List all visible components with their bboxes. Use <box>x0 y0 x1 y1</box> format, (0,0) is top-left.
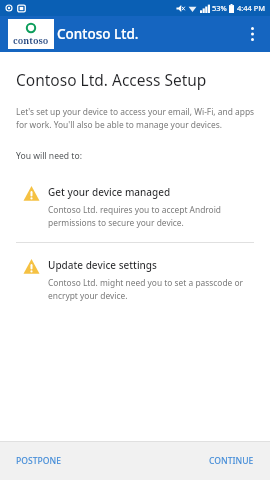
staticText: Get your device managed <box>48 185 171 199</box>
staticText: POSTPONE <box>16 455 61 467</box>
button[interactable]: Get your device managed <box>0 185 270 228</box>
button[interactable]: More options <box>234 16 270 52</box>
staticText: Update device settings <box>48 258 157 272</box>
staticText: You will need to: <box>16 150 82 162</box>
staticText: Contoso Ltd. Access Setup <box>16 69 207 90</box>
button[interactable]: POSTPONE <box>8 449 69 473</box>
staticText: Contoso Ltd. <box>57 25 139 43</box>
staticText: Contoso Ltd. requires you to accept Andr… <box>48 204 256 228</box>
button[interactable]: CONTINUE <box>201 449 262 473</box>
staticText: Let's set up your device to access your … <box>16 106 256 130</box>
staticText: CONTINUE <box>209 455 254 467</box>
staticText: 4:44 PM <box>237 3 266 13</box>
staticText: Contoso Ltd. might need you to set a pas… <box>48 277 256 301</box>
button[interactable]: Update device settings <box>0 258 270 301</box>
staticText: 53% <box>212 3 227 13</box>
staticText: contoso <box>13 34 49 46</box>
